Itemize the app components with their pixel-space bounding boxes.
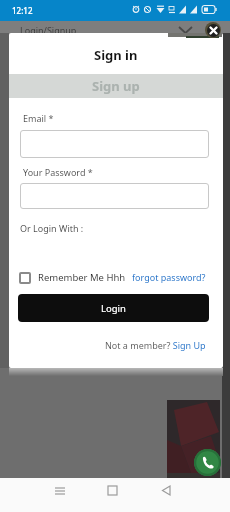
button[interactable]	[20, 183, 209, 209]
staticText: forgot password?	[132, 271, 206, 283]
button[interactable]: Login	[18, 294, 209, 322]
button[interactable]	[194, 449, 221, 476]
staticText: Sign up	[92, 77, 140, 95]
button[interactable]: Not a member? Sign Up	[65, 338, 206, 352]
staticText: Your Password *	[23, 166, 93, 178]
staticText: Or Login With :	[20, 222, 84, 234]
staticText: Login	[101, 302, 126, 315]
button[interactable]	[20, 130, 209, 158]
button[interactable]	[207, 24, 220, 37]
button[interactable]	[19, 272, 31, 284]
button[interactable]	[147, 478, 187, 512]
button[interactable]: Sign up	[9, 74, 223, 98]
staticText: Login/Signup	[20, 24, 77, 36]
staticText: Remember Me Hhh	[38, 271, 126, 284]
staticText: Not a member? Sign Up	[105, 339, 206, 351]
staticText: Sign in	[94, 46, 138, 64]
staticText: Email *	[23, 112, 54, 124]
staticText: 12:12	[12, 5, 33, 16]
button[interactable]	[40, 478, 80, 512]
button[interactable]: forgot password?	[129, 269, 206, 284]
button[interactable]	[92, 478, 132, 512]
